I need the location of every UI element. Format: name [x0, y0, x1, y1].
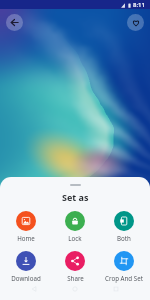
- button[interactable]: Back: [6, 14, 23, 31]
- staticText: Home: [17, 234, 35, 242]
- staticText: Set as: [62, 191, 89, 203]
- staticText: 8:11: [133, 1, 145, 9]
- button[interactable]: Download: [3, 251, 49, 282]
- staticText: Lock: [68, 234, 82, 242]
- staticText: Download: [11, 274, 41, 282]
- button[interactable]: Lock: [52, 211, 98, 242]
- staticText: Crop And Set: [105, 274, 143, 282]
- button[interactable]: Crop And Set: [101, 251, 147, 282]
- button[interactable]: Favorite: [127, 14, 144, 31]
- button[interactable]: Share: [52, 251, 98, 282]
- staticText: Share: [67, 274, 84, 282]
- staticText: Both: [117, 234, 131, 242]
- button[interactable]: Both: [101, 211, 147, 242]
- button[interactable]: Home: [3, 211, 49, 242]
